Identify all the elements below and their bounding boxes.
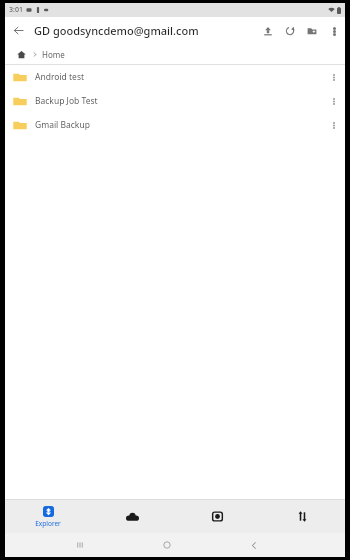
button[interactable]: Item options xyxy=(323,89,345,113)
button[interactable]: Home xyxy=(42,49,65,60)
staticText: Home xyxy=(42,49,65,60)
button[interactable]: Item options xyxy=(323,65,345,89)
staticText: Backup Job Test xyxy=(35,95,323,107)
staticText: 3:01 xyxy=(9,5,23,15)
button[interactable]: Sync xyxy=(260,500,345,533)
button[interactable]: More options xyxy=(323,20,345,42)
button[interactable]: Recents xyxy=(63,533,97,557)
staticText: GD goodsyncdemo@gmail.com xyxy=(34,23,199,38)
staticText: Android test xyxy=(35,71,323,83)
staticText: Gmail Backup xyxy=(35,119,323,131)
button[interactable]: Refresh xyxy=(279,20,301,42)
button[interactable]: Back xyxy=(5,17,32,44)
button[interactable]: Backup Job Test xyxy=(5,89,345,113)
button[interactable]: Home xyxy=(150,533,184,557)
button[interactable]: Android test xyxy=(5,65,345,89)
button[interactable]: Item options xyxy=(323,113,345,137)
button[interactable]: Accounts xyxy=(90,500,175,533)
button[interactable]: Gmail Backup xyxy=(5,113,345,137)
button[interactable]: Home xyxy=(14,47,28,61)
staticText: Explorer xyxy=(35,519,61,528)
button[interactable]: Back xyxy=(237,533,271,557)
button[interactable]: Jobs xyxy=(175,500,260,533)
button[interactable]: Explorer xyxy=(5,500,90,533)
button[interactable]: Upload xyxy=(257,20,279,42)
button[interactable]: New folder xyxy=(301,20,323,42)
